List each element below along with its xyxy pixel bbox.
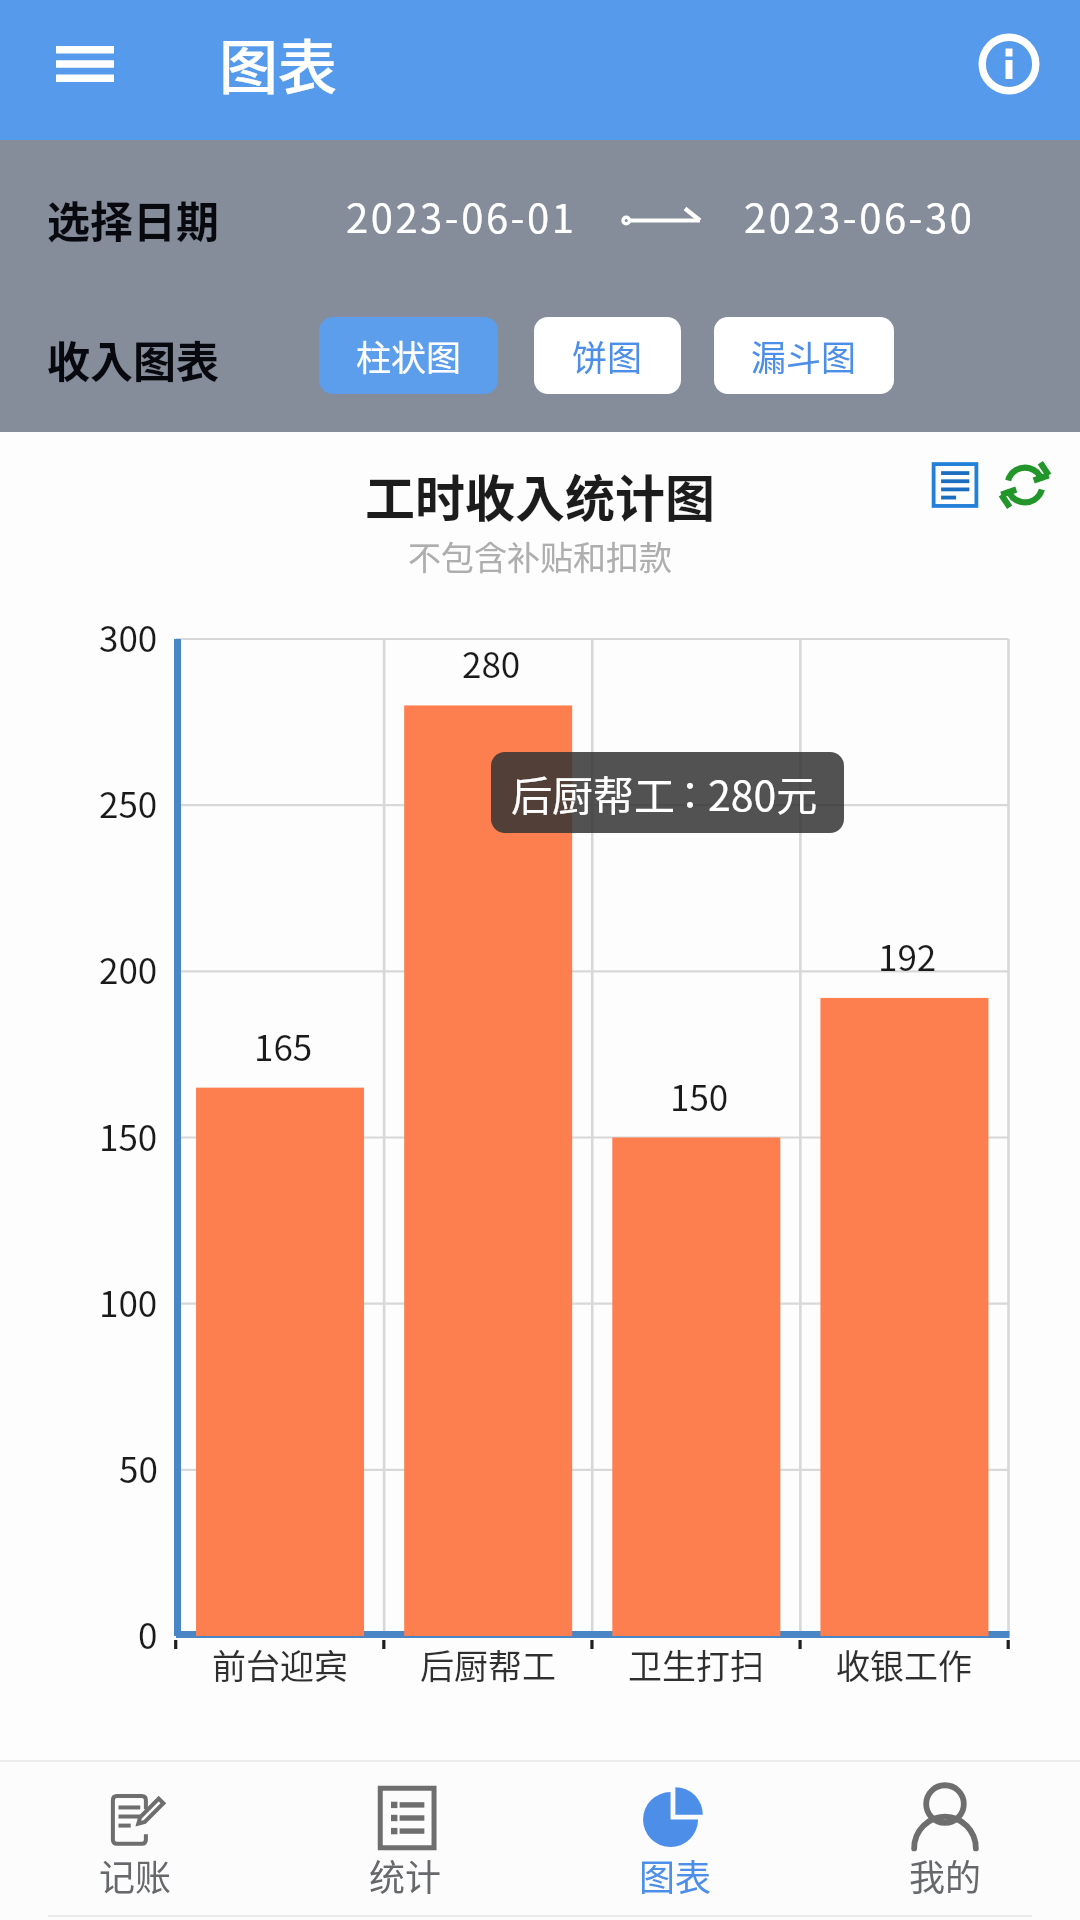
staticText: 280 [462, 637, 521, 687]
staticText: 前台迎宾 [212, 1640, 348, 1689]
button[interactable]: 漏斗图 [714, 317, 894, 394]
button[interactable]: 记账 [0, 1762, 270, 1915]
button[interactable]: 我的 [810, 1762, 1080, 1915]
staticText: 2023-06-30 [744, 187, 975, 245]
button[interactable]: 2023-06-01 [346, 187, 577, 245]
staticText: 2023-06-01 [346, 187, 577, 245]
staticText: 记账 [99, 1849, 172, 1901]
button[interactable]: Details [926, 456, 984, 514]
staticText: 250 [99, 777, 158, 827]
staticText: 不包含补贴和扣款 [408, 532, 672, 580]
button[interactable]: 2023-06-30 [744, 187, 975, 245]
staticText: 柱状图 [356, 330, 462, 381]
staticText: 饼图 [572, 330, 643, 381]
staticText: 漏斗图 [751, 330, 857, 381]
button[interactable]: Menu [39, 19, 130, 109]
staticText: 选择日期 [47, 188, 219, 250]
button[interactable]: 图表 [540, 1762, 810, 1915]
staticText: 后厨帮工 [420, 1640, 556, 1689]
staticText: 图表 [219, 21, 338, 106]
staticText: 卫生打扫 [628, 1640, 764, 1689]
staticText: 统计 [369, 1849, 442, 1901]
staticText: 150 [99, 1110, 158, 1160]
staticText: 50 [119, 1442, 158, 1492]
staticText: 我的 [909, 1849, 982, 1901]
staticText: 后厨帮工 [511, 763, 675, 822]
staticText: 0 [138, 1608, 158, 1658]
staticText: 280元 [708, 763, 818, 822]
button[interactable]: Info [964, 19, 1054, 109]
staticText: 300 [99, 611, 158, 661]
staticText: ： [671, 765, 710, 820]
button[interactable]: 柱状图 [319, 317, 498, 394]
staticText: 图表 [639, 1849, 712, 1901]
staticText: 192 [878, 930, 937, 980]
button[interactable]: Refresh [996, 456, 1054, 514]
staticText: 200 [99, 943, 158, 993]
button[interactable]: 饼图 [534, 317, 681, 394]
staticText: 收银工作 [836, 1640, 972, 1689]
staticText: 165 [254, 1020, 313, 1070]
staticText: 150 [670, 1070, 729, 1120]
staticText: 工时收入统计图 [365, 459, 715, 531]
staticText: 100 [99, 1276, 158, 1326]
staticText: 收入图表 [47, 328, 219, 390]
button[interactable]: 统计 [270, 1762, 540, 1915]
